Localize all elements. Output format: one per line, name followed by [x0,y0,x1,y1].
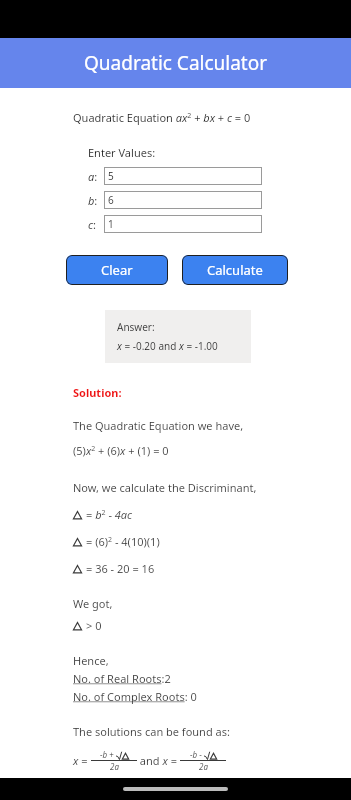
staticText: No. of Real Roots:2 [73,671,171,686]
staticText: Now, we calculate the Discriminant, [73,480,257,495]
staticText: = (6)2 - 4(10)(1) [86,534,160,549]
staticText: The Quadratic Equation we have, [73,418,244,433]
staticText: -b + [100,749,116,760]
staticText: (5)x2 + (6)x + (1) = 0 [73,443,169,458]
staticText: Quadratic Calculator [84,50,268,76]
staticText: = b2 - 4ac [86,507,133,522]
staticText: Enter Values: [88,145,156,160]
staticText: Answer: [117,320,155,334]
button[interactable]: 5 [104,167,262,185]
staticText: 2a [199,761,208,772]
staticText: Quadratic Equation ax2 + bx + c = 0 [73,110,251,125]
staticText: c: [88,217,101,232]
other: Quadratic Calculator title bar [0,38,351,88]
button[interactable]: 1 [104,215,262,233]
staticText: 6 [108,193,114,207]
button[interactable]: Calculate [182,255,288,285]
staticText: Solution: [73,385,122,400]
staticText: We got, [73,596,113,611]
button[interactable]: Clear [66,255,168,285]
staticText: No. of Complex Roots: 0 [73,689,197,704]
staticText: b: [88,193,101,208]
staticText: = 36 - 20 = 16 [86,561,155,576]
staticText: -b - [190,749,204,760]
staticText: 2a [110,761,119,772]
staticText: Calculate [207,261,263,279]
staticText: x = [73,753,91,768]
staticText: > 0 [86,618,102,633]
staticText: and x = [137,753,180,768]
button[interactable]: 6 [104,191,262,209]
staticText: a: [88,169,101,184]
staticText: Clear [101,261,133,279]
staticText: x = -0.20 and x = -1.00 [117,339,218,353]
staticText: 1 [108,217,114,231]
staticText: Hence, [73,653,109,668]
staticText: The solutions can be found as: [73,724,230,739]
staticText: 5 [108,169,114,183]
